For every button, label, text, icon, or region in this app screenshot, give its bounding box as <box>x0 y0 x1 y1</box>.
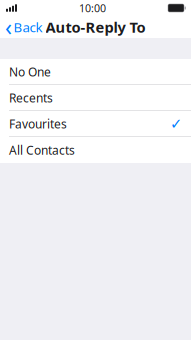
button[interactable]: No One <box>0 59 191 85</box>
staticText: No One <box>9 64 51 80</box>
button[interactable]: Recents <box>0 85 191 111</box>
staticText: Auto-Reply To <box>45 17 145 37</box>
staticText: Favourites <box>9 116 67 132</box>
staticText: Back <box>13 18 42 36</box>
staticText: ✓ <box>170 115 182 132</box>
button[interactable]: Favourites <box>0 111 191 137</box>
button[interactable]: All Contacts <box>0 137 191 163</box>
staticText: All Contacts <box>9 142 75 158</box>
staticText: Recents <box>9 90 53 106</box>
staticText: 10:00 <box>79 1 106 15</box>
staticText: ‹ <box>5 12 12 42</box>
button[interactable]: ‹ <box>0 16 48 38</box>
